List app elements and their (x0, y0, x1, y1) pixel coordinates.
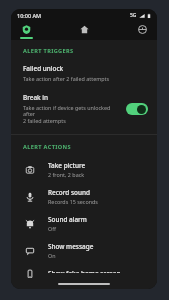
staticText: Records 15 seconds (48, 198, 98, 205)
staticText: Take action after 2 failed attempts (23, 75, 110, 82)
staticText: Off (48, 225, 56, 232)
button[interactable]: Take picture (11, 156, 157, 183)
button[interactable]: Home (69, 21, 99, 40)
button[interactable]: History (127, 21, 157, 40)
staticText: Failed unlock (23, 64, 64, 73)
button[interactable]: Toggle break in (126, 103, 148, 115)
staticText: On (48, 252, 56, 259)
button[interactable]: Show fake home screen (11, 264, 157, 278)
button[interactable]: Failed unlock (11, 60, 157, 88)
staticText: ALERT TRIGGERS (23, 47, 74, 55)
staticText: Take action if device gets unlocked afte… (23, 104, 122, 125)
staticText: 5G (130, 12, 137, 19)
button[interactable]: Show message (11, 237, 157, 264)
staticText: Break in (23, 93, 49, 102)
staticText: Record sound (48, 188, 90, 197)
button[interactable]: Alerts (11, 21, 41, 40)
button[interactable]: Sound alarm (11, 210, 157, 237)
staticText: Show message (48, 242, 94, 251)
staticText: 2 front, 2 back (48, 171, 85, 178)
staticText: Sound alarm (48, 215, 87, 224)
button[interactable]: Record sound (11, 183, 157, 210)
button[interactable]: Break in (11, 88, 157, 131)
staticText: Show fake home screen (48, 269, 121, 273)
staticText: 10:00 AM (17, 12, 42, 19)
staticText: Take picture (48, 161, 86, 170)
staticText: ALERT ACTIONS (23, 143, 71, 151)
